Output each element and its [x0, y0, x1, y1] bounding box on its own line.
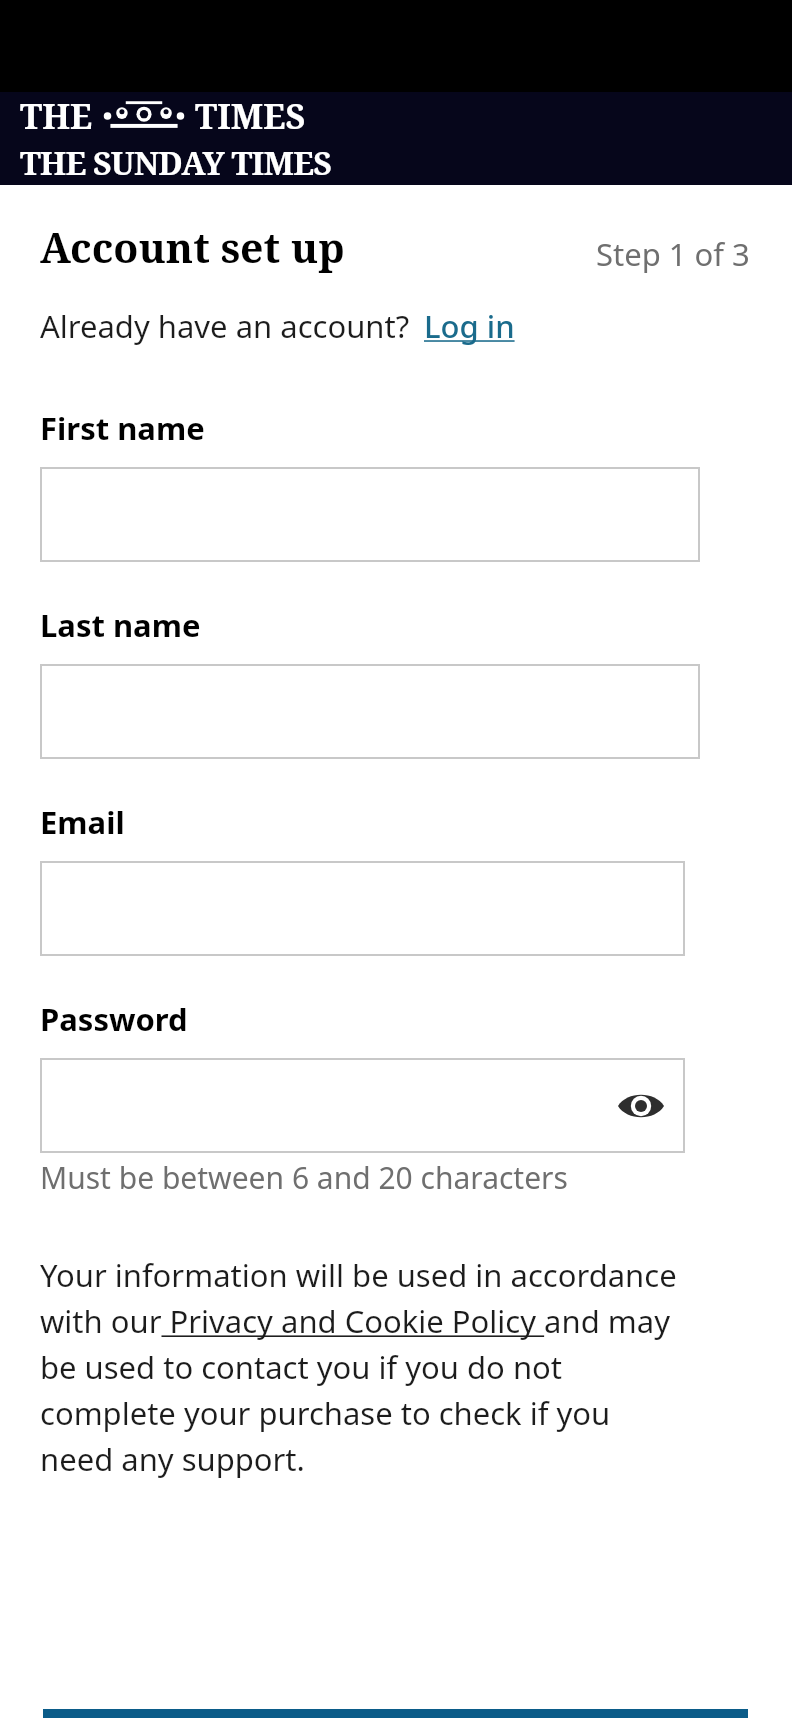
button[interactable]: Email [40, 861, 685, 956]
button[interactable]: The Times and The Sunday Times [0, 92, 792, 185]
button[interactable]: Password [40, 1058, 685, 1153]
staticText: TIMES [195, 93, 306, 139]
staticText: Log in [424, 305, 515, 347]
staticText: Account set up [40, 219, 345, 275]
staticText: Password [40, 998, 188, 1040]
staticText: Already have an account? [40, 305, 410, 347]
button[interactable]: Your information will be used in accorda… [40, 1254, 684, 1480]
staticText: THE [20, 93, 93, 139]
staticText: First name [40, 407, 205, 449]
staticText: THE SUNDAY TIMES [20, 141, 332, 185]
staticText: Step 1 of 3 [596, 233, 750, 275]
button[interactable]: First name [40, 467, 700, 562]
staticText: Last name [40, 604, 201, 646]
button[interactable]: Log in [422, 303, 517, 349]
staticText: Email [40, 801, 125, 843]
button[interactable]: Show password [613, 1078, 669, 1134]
staticText: Must be between 6 and 20 characters [40, 1157, 568, 1198]
button[interactable]: Last name [40, 664, 700, 759]
